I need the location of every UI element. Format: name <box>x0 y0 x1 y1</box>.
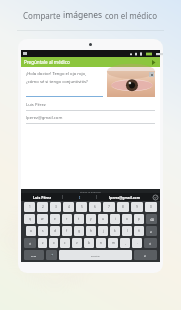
button[interactable]: 9 <box>131 202 143 212</box>
staticText: ?123 <box>31 254 37 257</box>
button[interactable]: m <box>108 238 118 248</box>
button[interactable]: lperez@gmail.com <box>26 115 155 124</box>
staticText: k <box>114 229 116 233</box>
staticText: 9 <box>136 205 138 209</box>
button[interactable]: b <box>84 238 94 248</box>
staticText: o <box>126 217 128 221</box>
button[interactable]: Español <box>59 250 132 260</box>
staticText: b <box>88 241 90 245</box>
button[interactable]: r <box>62 214 72 224</box>
button[interactable]: q <box>24 214 35 224</box>
button[interactable]: v <box>72 238 82 248</box>
button[interactable]: 1 <box>24 202 35 212</box>
button[interactable]: e <box>50 214 60 224</box>
staticText: f <box>66 229 68 233</box>
button[interactable]: lperez@gmail.com <box>97 193 151 201</box>
button[interactable]: s <box>38 226 48 236</box>
staticText: . <box>137 241 138 245</box>
staticText: a <box>30 229 32 233</box>
button[interactable]: Quitar imagen <box>149 72 154 77</box>
staticText: 4 <box>68 205 70 209</box>
button[interactable]: f <box>62 226 72 236</box>
button[interactable]: 🎤 <box>46 250 57 260</box>
button[interactable]: ¡Hola doctor! Tengo el ojo rojo, <box>26 71 103 97</box>
button[interactable]: ⇧ <box>144 238 157 248</box>
staticText: ⇧ <box>29 242 32 245</box>
staticText: Español <box>91 254 100 257</box>
button[interactable]: 6 <box>89 202 101 212</box>
button[interactable]: t <box>74 214 84 224</box>
button[interactable]: d <box>50 226 60 236</box>
staticText: ¡Hola doctor! Tengo el ojo rojo, <box>26 71 87 77</box>
staticText: 8 <box>122 205 124 209</box>
staticText: 7 <box>108 205 110 209</box>
staticText: g <box>78 229 80 233</box>
button[interactable]: ?123 <box>24 250 44 260</box>
staticText: 1 <box>29 205 31 209</box>
staticText: ⌫ <box>150 218 154 221</box>
staticText: t <box>78 217 80 221</box>
button[interactable]: l <box>122 226 132 236</box>
staticText: j <box>103 229 104 233</box>
button[interactable]: w <box>37 214 48 224</box>
button[interactable]: 5 <box>76 202 87 212</box>
staticText: Luis Pérez <box>33 195 51 200</box>
staticText: v <box>76 241 78 245</box>
button[interactable]: x <box>49 238 58 248</box>
button[interactable]: . <box>132 238 142 248</box>
staticText: I <box>79 195 81 200</box>
staticText: x <box>53 241 55 245</box>
staticText: ñ <box>138 229 140 233</box>
button[interactable]: ↵ <box>134 250 157 260</box>
button[interactable]: 2 <box>37 202 48 212</box>
button[interactable]: Quitar imagen <box>107 71 155 97</box>
staticText: ↵ <box>150 230 153 233</box>
staticText: n <box>100 241 102 245</box>
staticText: 6 <box>94 205 96 209</box>
staticText: s <box>42 229 44 233</box>
button[interactable]: z <box>38 238 47 248</box>
button[interactable]: Confirmar <box>151 193 160 201</box>
staticText: ↵ <box>144 254 147 257</box>
button[interactable]: g <box>74 226 84 236</box>
button[interactable]: k <box>110 226 120 236</box>
button[interactable]: , <box>120 238 130 248</box>
button[interactable]: ⇧ <box>24 238 36 248</box>
staticText: 3 <box>55 205 57 209</box>
staticText: añadir tu dirección <box>80 190 102 193</box>
staticText: i <box>115 217 116 221</box>
button[interactable]: I <box>63 193 96 201</box>
button[interactable]: n <box>96 238 106 248</box>
button[interactable]: 3 <box>50 202 61 212</box>
button[interactable]: 4 <box>63 202 74 212</box>
button[interactable]: c <box>60 238 70 248</box>
staticText: m <box>112 241 115 245</box>
button[interactable]: 7 <box>103 202 115 212</box>
staticText: lperez@gmail.com <box>26 115 63 121</box>
button[interactable]: a <box>26 226 36 236</box>
button[interactable]: o <box>122 214 132 224</box>
button[interactable]: Luis Pérez <box>21 193 62 201</box>
button[interactable]: y <box>86 214 96 224</box>
button[interactable]: i <box>110 214 120 224</box>
button[interactable]: Luis Pérez <box>26 102 155 111</box>
staticText: , <box>125 241 126 245</box>
button[interactable]: Enviar <box>150 59 157 66</box>
button[interactable]: 0 <box>145 202 157 212</box>
staticText: h <box>90 229 92 233</box>
staticText: 5 <box>81 205 83 209</box>
button[interactable]: Pregúntale al médico <box>21 57 160 67</box>
staticText: e <box>54 217 56 221</box>
button[interactable]: h <box>86 226 96 236</box>
staticText: w <box>41 217 44 221</box>
button[interactable]: ñ <box>134 226 144 236</box>
button[interactable]: ↵ <box>146 226 157 236</box>
button[interactable]: ⌫ <box>146 214 157 224</box>
staticText: u <box>102 217 104 221</box>
button[interactable]: 8 <box>117 202 129 212</box>
button[interactable]: p <box>134 214 144 224</box>
staticText: y <box>90 217 92 221</box>
staticText: Luis Pérez <box>26 102 46 108</box>
button[interactable]: j <box>98 226 108 236</box>
button[interactable]: u <box>98 214 108 224</box>
